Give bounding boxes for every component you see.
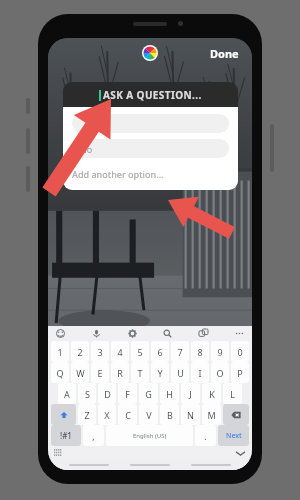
button[interactable]: Search	[162, 328, 173, 339]
staticText: O	[216, 367, 224, 379]
button[interactable]: H	[160, 383, 179, 404]
staticText: P	[237, 367, 243, 379]
staticText: Add another option...	[72, 168, 164, 180]
button[interactable]: 4	[111, 341, 129, 362]
button[interactable]: Add another option...	[72, 165, 229, 183]
staticText: Next	[226, 431, 242, 441]
button[interactable]: N	[181, 404, 200, 425]
button[interactable]: B	[160, 404, 179, 425]
button[interactable]: E	[91, 362, 109, 383]
staticText: Done	[210, 46, 239, 61]
staticText: 1	[57, 346, 63, 358]
staticText: Q	[56, 367, 64, 379]
button[interactable]: 1	[51, 341, 69, 362]
button[interactable]: V	[139, 404, 158, 425]
staticText: A	[64, 388, 70, 400]
button[interactable]: 0	[231, 341, 249, 362]
button[interactable]: Voice input	[91, 328, 102, 339]
staticText: N	[187, 409, 194, 421]
button[interactable]: C	[118, 404, 137, 425]
staticText: E	[97, 367, 103, 379]
button[interactable]: P	[231, 362, 249, 383]
button[interactable]: O	[211, 362, 229, 383]
button[interactable]: ASK A QUESTION...	[63, 82, 238, 107]
button[interactable]: 9	[211, 341, 229, 362]
button[interactable]: Hide keyboard	[236, 449, 245, 458]
staticText: I	[198, 367, 202, 379]
button[interactable]: W	[71, 362, 89, 383]
button[interactable]: F	[118, 383, 137, 404]
staticText: 7	[177, 346, 183, 358]
staticText: !#1	[60, 430, 72, 441]
button[interactable]: Translate	[198, 328, 209, 339]
staticText: No	[80, 143, 93, 155]
staticText: 9	[217, 346, 223, 358]
button[interactable]: Done	[207, 44, 242, 63]
button[interactable]: 8	[191, 341, 209, 362]
button[interactable]: 3	[91, 341, 109, 362]
button[interactable]: Backspace	[223, 404, 249, 425]
button[interactable]: U	[171, 362, 189, 383]
button[interactable]: Z	[78, 404, 96, 425]
button[interactable]: A	[58, 383, 76, 404]
staticText: B	[167, 409, 173, 421]
staticText: J	[189, 388, 192, 400]
staticText: K	[209, 388, 215, 400]
staticText: 0	[237, 346, 243, 358]
staticText: L	[230, 388, 235, 400]
staticText: U	[177, 367, 184, 379]
staticText: English (US)	[133, 432, 167, 440]
button[interactable]: More options	[234, 328, 245, 339]
staticText: 4	[117, 346, 123, 358]
button[interactable]: .	[195, 425, 216, 446]
button[interactable]: T	[131, 362, 149, 383]
button[interactable]: Q	[51, 362, 69, 383]
staticText: H	[166, 388, 173, 400]
staticText: C	[125, 409, 131, 421]
button[interactable]: Color picker	[142, 45, 158, 61]
button[interactable]: X	[98, 404, 116, 425]
button[interactable]: No	[72, 139, 229, 158]
button[interactable]: !#1	[51, 425, 81, 446]
button[interactable]: Shift	[51, 404, 76, 425]
button[interactable]: 6	[151, 341, 169, 362]
staticText: G	[145, 388, 152, 400]
button[interactable]: Y	[151, 362, 169, 383]
staticText: R	[117, 367, 123, 379]
button[interactable]: 7	[171, 341, 189, 362]
button[interactable]: 5	[131, 341, 149, 362]
staticText: M	[207, 409, 216, 421]
button[interactable]: M	[202, 404, 221, 425]
button[interactable]: ,	[83, 425, 104, 446]
staticText: D	[104, 388, 111, 400]
staticText: Z	[84, 409, 90, 421]
staticText: 8	[197, 346, 203, 358]
button[interactable]: L	[223, 383, 242, 404]
staticText: 5	[137, 346, 143, 358]
button[interactable]: Settings	[127, 328, 138, 339]
staticText: W	[76, 367, 85, 379]
button[interactable]: S	[78, 383, 96, 404]
button[interactable]: K	[202, 383, 221, 404]
button[interactable]: English (US)	[106, 425, 193, 446]
button[interactable]: Emoji	[55, 328, 66, 339]
button[interactable]: J	[181, 383, 200, 404]
button[interactable]: Next	[218, 425, 249, 446]
staticText: X	[104, 409, 110, 421]
button[interactable]: Switch keyboard	[54, 449, 62, 457]
button[interactable]: D	[98, 383, 116, 404]
staticText: S	[85, 388, 90, 400]
button[interactable]	[72, 114, 229, 133]
button[interactable]: I	[191, 362, 209, 383]
staticText: ,	[92, 430, 95, 442]
button[interactable]: R	[111, 362, 129, 383]
staticText: T	[137, 367, 143, 379]
staticText: 2	[77, 346, 83, 358]
staticText: .	[204, 430, 207, 442]
staticText: V	[146, 409, 152, 421]
button[interactable]: G	[139, 383, 158, 404]
button[interactable]: 2	[71, 341, 89, 362]
